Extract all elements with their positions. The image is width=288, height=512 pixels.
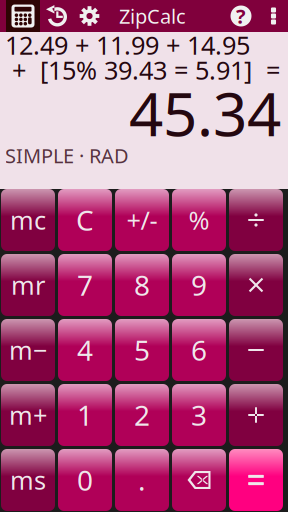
button[interactable]: 7 (58, 254, 112, 316)
button[interactable]: m+ (1, 384, 55, 446)
button[interactable]: mr (1, 254, 55, 316)
button[interactable]: Subtract (229, 319, 283, 381)
button[interactable]: More options (259, 0, 288, 32)
staticText: 2 (134, 396, 150, 434)
button[interactable]: 1 (58, 384, 112, 446)
staticText: 1 (77, 396, 93, 434)
staticText: C (76, 201, 94, 239)
staticText: 12.49 + 11.99 + 14.95 (5, 28, 250, 62)
staticText: ms (10, 463, 46, 497)
staticText: 5 (134, 331, 150, 369)
button[interactable]: . (115, 449, 169, 511)
staticText: . (138, 461, 146, 499)
button[interactable]: Settings (73, 0, 106, 32)
button[interactable]: Divide (229, 189, 283, 251)
staticText: SIMPLE · RAD (5, 142, 129, 169)
button[interactable]: Help (223, 0, 259, 32)
button[interactable]: 8 (115, 254, 169, 316)
button[interactable]: 0 (58, 449, 112, 511)
button[interactable]: Plus minus (115, 189, 169, 251)
staticText: + [15% 39.43 = 5.91] = (12, 53, 280, 87)
staticText: mr (11, 268, 45, 302)
button[interactable]: Equals (229, 449, 283, 511)
button[interactable]: m− (1, 319, 55, 381)
button[interactable]: History (40, 0, 73, 32)
staticText: m− (9, 333, 47, 367)
staticText: 3 (191, 396, 207, 434)
staticText: 45.34 (129, 73, 281, 153)
button[interactable]: Add (229, 384, 283, 446)
button[interactable]: Percent (172, 189, 226, 251)
staticText: 4 (77, 331, 93, 369)
button[interactable]: 5 (115, 319, 169, 381)
staticText: 9 (191, 266, 207, 304)
button[interactable]: 6 (172, 319, 226, 381)
button[interactable]: 2 (115, 384, 169, 446)
button[interactable]: mc (1, 189, 55, 251)
staticText: ZipCalc (119, 3, 186, 29)
staticText: ? (236, 3, 246, 29)
staticText: 6 (191, 331, 207, 369)
staticText: 0 (77, 461, 93, 499)
staticText: 8 (134, 266, 150, 304)
button[interactable]: 9 (172, 254, 226, 316)
button[interactable]: Multiply (229, 254, 283, 316)
button[interactable]: ms (1, 449, 55, 511)
button[interactable]: Calculator (6, 0, 40, 32)
button[interactable]: C (58, 189, 112, 251)
button[interactable]: 3 (172, 384, 226, 446)
staticText: m+ (9, 398, 47, 432)
button[interactable]: 4 (58, 319, 112, 381)
staticText: mc (10, 203, 46, 237)
staticText: 7 (77, 266, 93, 304)
staticText: +/- (126, 203, 157, 237)
button[interactable]: Backspace (172, 449, 226, 511)
staticText: % (188, 203, 209, 237)
